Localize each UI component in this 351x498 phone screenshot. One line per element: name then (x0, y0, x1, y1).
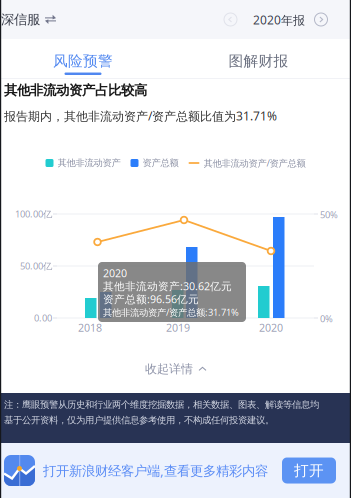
staticText: 图解财报 (228, 52, 288, 70)
staticText: 资产总额:96.56亿元 (103, 292, 199, 306)
staticText: 收起详情 (145, 362, 193, 376)
staticText: 0% (320, 312, 333, 325)
staticText: 100.00亿 (15, 208, 52, 220)
staticText: 2018 (78, 320, 102, 335)
button[interactable]: 风险预警 (0, 39, 166, 78)
staticText: 风险预警 (53, 52, 113, 70)
staticText: 资产总额 (142, 157, 178, 169)
staticText: 其他非流动资产/资产总额 (203, 157, 305, 169)
button[interactable]: 图解财报 (166, 39, 351, 78)
staticText: 基于公开资料，仅为用户提供信息参考使用，不构成任何投资建议。 (4, 414, 274, 426)
staticText: 2020 (259, 320, 283, 335)
staticText: 打开新浪财经客户端,查看更多精彩内容 (43, 462, 268, 479)
staticText: 0.00 (34, 312, 52, 324)
staticText: 打开 (294, 461, 324, 479)
staticText: 报告期内，其他非流动资产/资产总额比值为31.71% (4, 108, 277, 124)
staticText: 其他非流动资产/资产总额:31.71% (103, 306, 239, 318)
staticText: 50.00亿 (20, 260, 52, 272)
staticText: 其他非流动资产:30.62亿元 (103, 279, 232, 293)
staticText: 2020 (103, 266, 127, 280)
button[interactable]: 打开 (282, 457, 336, 483)
staticText: 2020年报 (253, 12, 305, 28)
staticText: 深信服 (1, 11, 40, 28)
staticText: 2019 (166, 320, 190, 335)
button[interactable]: 深信服 (0, 0, 60, 39)
button[interactable]: 收起详情 (0, 349, 351, 389)
button[interactable]: 下一期 (314, 12, 328, 26)
staticText: 注：鹰眼预警从历史和行业两个维度挖掘数据，相关数据、图表、解读等信息均 (4, 399, 319, 410)
staticText: 其他非流动资产 (57, 157, 120, 169)
staticText: 其他非流动资产占比较高 (4, 82, 147, 98)
staticText: 50% (320, 208, 338, 221)
button[interactable]: 上一期 (223, 12, 237, 26)
